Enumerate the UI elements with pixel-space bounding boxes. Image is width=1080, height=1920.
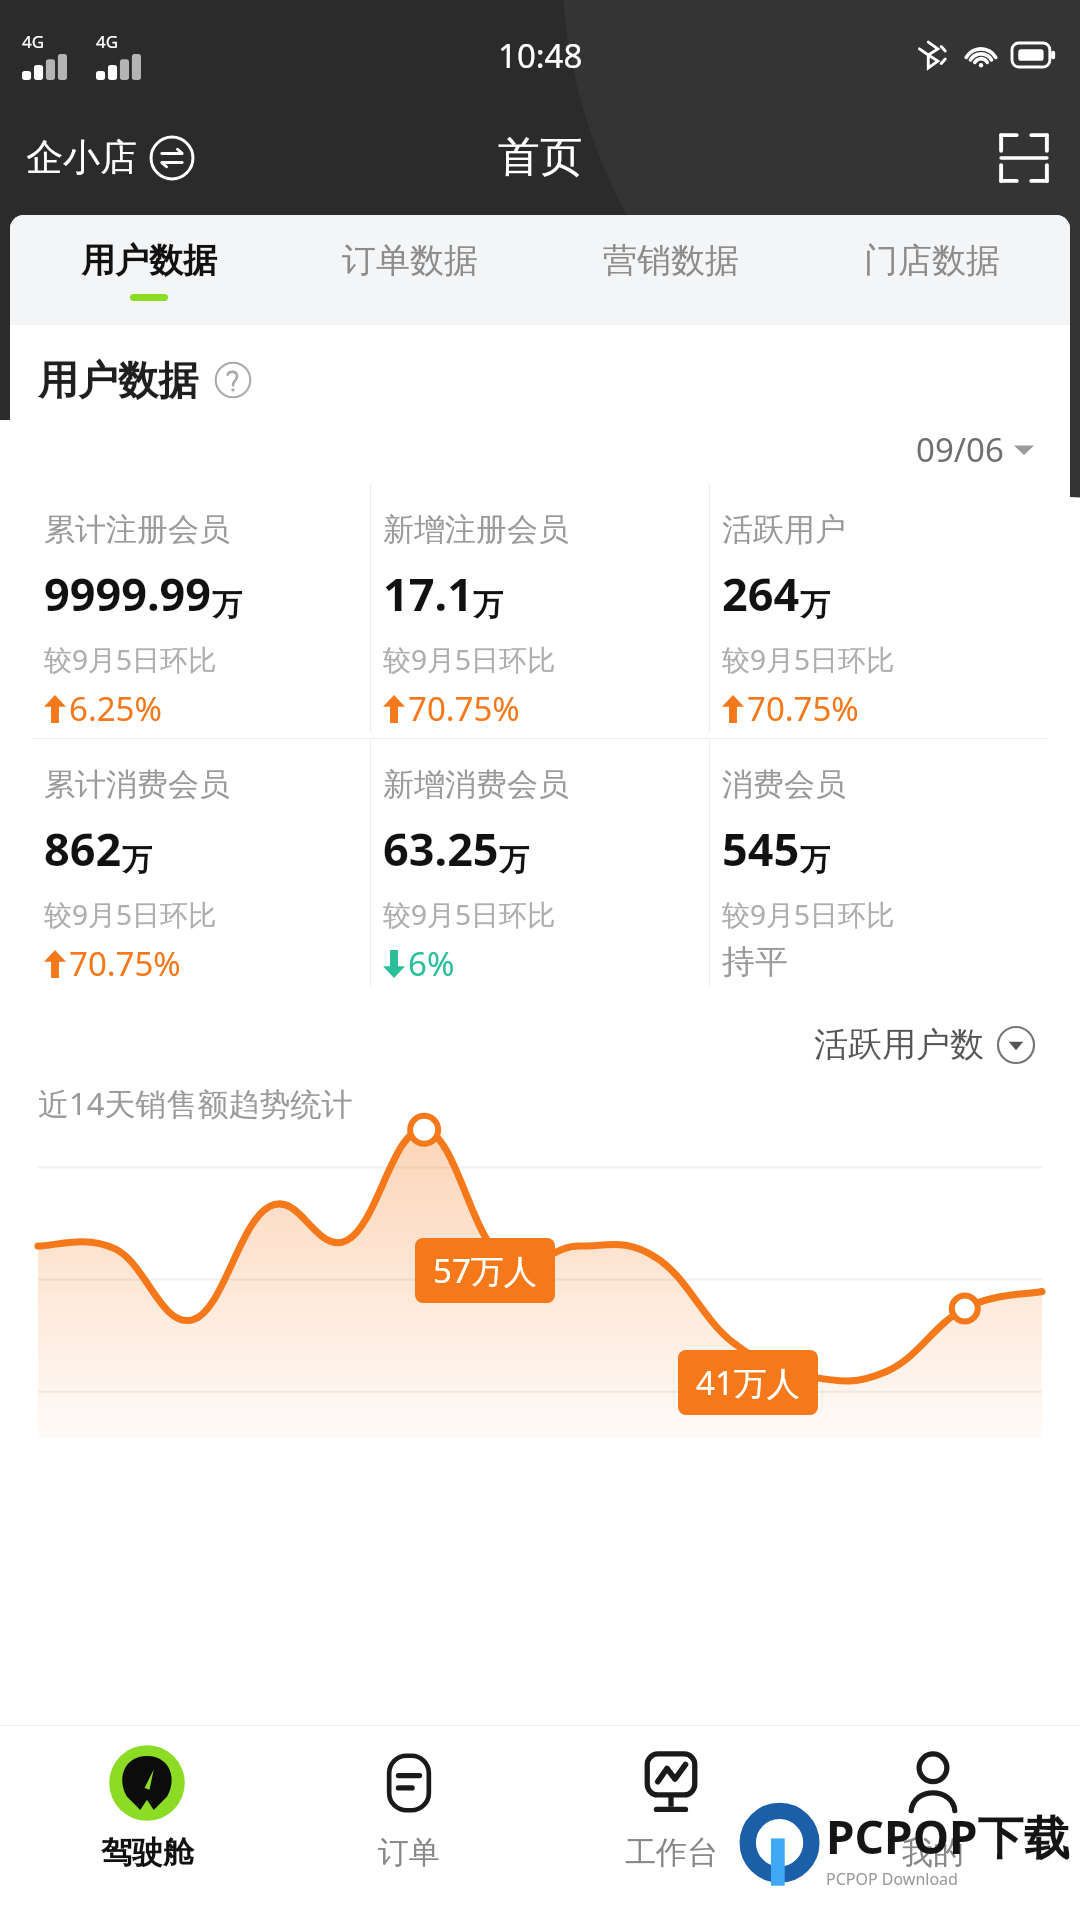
staticText: 4G (22, 30, 45, 53)
button[interactable]: 订单 (294, 1737, 524, 1872)
staticText: 门店数据 (864, 239, 1000, 282)
staticText: 营销数据 (603, 239, 739, 282)
staticText: 较9月5日环比 (722, 640, 895, 678)
staticText: 较9月5日环比 (383, 640, 556, 678)
staticText: 10:48 (498, 33, 583, 78)
staticText: 驾驶舱 (101, 1833, 194, 1872)
staticText: 万 (800, 586, 830, 624)
staticText: PCPOP下载 (826, 1805, 1070, 1868)
staticText: 订单 (378, 1833, 440, 1872)
button[interactable]: 营销数据 (540, 215, 801, 325)
staticText: 09/06 (916, 427, 1004, 472)
staticText: 新增注册会员 (383, 510, 569, 549)
staticText: 近14天销售额趋势统计 (38, 1082, 353, 1124)
button[interactable]: 驾驶舱 (32, 1737, 262, 1872)
staticText: 万 (212, 586, 242, 624)
staticText: 我的 (902, 1833, 964, 1872)
button[interactable]: 工作台 (556, 1737, 786, 1872)
button[interactable]: 用户数据 (18, 215, 279, 325)
staticText: PCPOP Download (826, 1868, 958, 1890)
staticText: 较9月5日环比 (722, 895, 895, 933)
staticText: 63.25 (383, 818, 499, 879)
staticText: 17.1 (383, 563, 473, 624)
staticText: 862 (44, 818, 122, 879)
staticText: 万 (800, 841, 830, 879)
staticText: 累计注册会员 (44, 510, 230, 549)
staticText: 万 (499, 841, 529, 879)
button[interactable]: 新增注册会员 (371, 484, 709, 732)
button[interactable]: 累计注册会员 (32, 484, 370, 732)
button[interactable]: 订单数据 (279, 215, 540, 325)
staticText: 4G (96, 30, 119, 53)
button[interactable]: 企小店 (22, 130, 199, 185)
button[interactable]: 新增消费会员 (371, 739, 709, 987)
staticText: 较9月5日环比 (383, 895, 556, 933)
staticText: 41万人 (696, 1360, 800, 1405)
button[interactable]: 消费会员 (710, 739, 1048, 987)
staticText: 264 (722, 563, 800, 624)
staticText: 用户数据 (81, 239, 217, 282)
button[interactable]: Scan (992, 126, 1056, 190)
staticText: 较9月5日环比 (44, 640, 217, 678)
staticText: 70.75% (408, 686, 520, 731)
staticText: 消费会员 (722, 765, 846, 804)
staticText: 545 (722, 818, 800, 879)
staticText: 57万人 (433, 1248, 537, 1293)
button[interactable]: 活跃用户数 (808, 1017, 1042, 1072)
staticText: 首页 (498, 131, 582, 184)
staticText: 活跃用户 (722, 510, 846, 549)
staticText: 活跃用户数 (814, 1023, 984, 1066)
button[interactable]: 09/06 (910, 421, 1040, 478)
staticText: 6.25% (69, 686, 162, 731)
staticText: 6% (408, 941, 455, 986)
button[interactable]: 活跃用户 (710, 484, 1048, 732)
staticText: 70.75% (747, 686, 859, 731)
button[interactable]: 门店数据 (801, 215, 1062, 325)
staticText: 持平 (722, 941, 788, 983)
staticText: 万 (122, 841, 152, 879)
staticText: 万 (473, 586, 503, 624)
staticText: 企小店 (26, 134, 137, 181)
staticText: 新增消费会员 (383, 765, 569, 804)
staticText: 累计消费会员 (44, 765, 230, 804)
button[interactable]: 累计消费会员 (32, 739, 370, 987)
staticText: 用户数据 (38, 355, 198, 405)
staticText: 较9月5日环比 (44, 895, 217, 933)
staticText: 工作台 (625, 1833, 718, 1872)
button[interactable]: 我的 (818, 1737, 1048, 1872)
button[interactable]: Help (212, 359, 254, 401)
staticText: 订单数据 (342, 239, 478, 282)
staticText: 9999.99 (44, 563, 212, 624)
staticText: 70.75% (69, 941, 181, 986)
